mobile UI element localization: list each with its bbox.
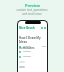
button[interactable] xyxy=(19,49,46,54)
staticText: in minutes xyxy=(19,46,35,50)
button[interactable]: Nice Brush xyxy=(19,26,46,30)
staticText: Nice Brush xyxy=(19,26,35,30)
staticText: How I Draw My Ideas xyxy=(19,36,47,44)
staticText: and much more xyxy=(22,12,42,16)
button[interactable] xyxy=(19,64,46,69)
button[interactable] xyxy=(19,44,46,49)
button[interactable] xyxy=(19,54,46,59)
staticText: custom text, operations xyxy=(16,8,48,12)
button[interactable] xyxy=(19,59,46,64)
staticText: Preview xyxy=(25,3,40,8)
